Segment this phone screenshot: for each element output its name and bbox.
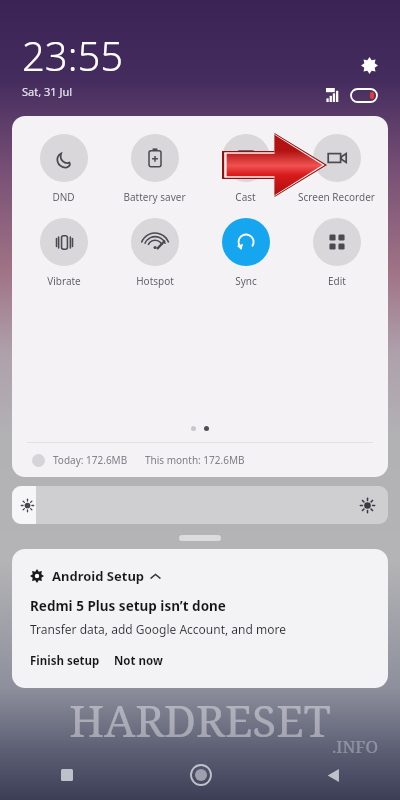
staticText: Redmi 5 Plus setup isn’t done [30,597,226,615]
button[interactable] [179,535,221,541]
button[interactable]: Today: 172.6MB [12,443,388,477]
staticText: 23:55 [22,28,124,82]
staticText: HARDRESET [0,690,400,750]
button[interactable]: Recents [0,750,134,800]
staticText: Sync [235,274,257,288]
staticText: Finish setup [30,653,100,669]
button[interactable]: Android Setup [12,549,388,688]
staticText: Hotspot [136,274,174,288]
button[interactable]: Back [267,750,400,800]
staticText: Cast [235,190,256,204]
button[interactable]: Settings [352,48,386,82]
staticText: This month: 172.6MB [145,453,245,467]
staticText: Battery saver [123,190,186,204]
staticText: DND [52,190,75,204]
button[interactable]: Home [134,750,267,800]
staticText: Transfer data, add Google Account, and m… [30,621,286,637]
staticText: Screen Recorder [298,190,375,204]
staticText: Android Setup [52,567,145,585]
button[interactable]: Sync [200,218,291,288]
staticText: Sat, 31 Jul [22,84,73,99]
staticText: Edit [328,274,346,288]
button[interactable]: Edit [291,218,382,288]
button[interactable]: DND [18,134,109,204]
button[interactable]: Finish setup [30,653,100,669]
staticText: Not now [114,653,163,669]
button[interactable]: Cast [200,134,291,204]
button[interactable]: Vibrate [18,218,109,288]
staticText: .INFO [0,735,378,758]
staticText: Vibrate [47,274,81,288]
button[interactable]: Screen Recorder [291,134,382,204]
button[interactable]: Battery saver [109,134,200,204]
button[interactable]: Hotspot [109,218,200,288]
button[interactable]: Not now [114,653,163,669]
button[interactable]: Brightness [12,486,388,524]
staticText: Today: 172.6MB [53,453,128,467]
